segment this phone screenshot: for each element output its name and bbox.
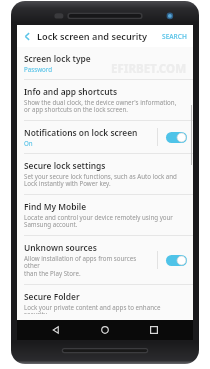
staticText: SEARCH xyxy=(162,32,187,41)
button[interactable]: Secure Folder xyxy=(17,285,193,320)
button[interactable]: SEARCH xyxy=(156,29,193,44)
button[interactable]: Notifications on lock screen xyxy=(17,121,193,154)
staticText: Lock your private content and apps to en… xyxy=(24,303,161,314)
staticText: Password xyxy=(24,65,52,73)
button[interactable]: Info and app shortcuts xyxy=(17,80,193,121)
button[interactable]: Unknown sources xyxy=(17,236,193,285)
staticText: Set your secure lock functions, such as … xyxy=(24,172,177,188)
button[interactable]: Find My Mobile xyxy=(17,195,193,236)
staticText: EFIRBET.COM xyxy=(111,61,187,77)
staticText: Info and app shortcuts xyxy=(24,86,118,97)
staticText: Lock screen and security xyxy=(37,30,148,43)
staticText: On xyxy=(24,139,33,147)
staticText: Locate and control your device remotely … xyxy=(24,213,173,229)
button[interactable]: Recent apps xyxy=(144,320,164,340)
staticText: Secure Folder xyxy=(24,291,80,302)
staticText: Notifications on lock screen xyxy=(24,127,138,138)
staticText: Find My Mobile xyxy=(24,201,87,212)
button[interactable]: Secure lock settings xyxy=(17,154,193,195)
staticText: Screen lock type xyxy=(24,53,91,64)
staticText: Allow installation of apps from sources … xyxy=(24,254,153,278)
button[interactable]: Home xyxy=(95,320,115,340)
staticText: Unknown sources xyxy=(24,242,97,253)
button[interactable]: Screen lock type xyxy=(17,47,193,80)
staticText: Secure lock settings xyxy=(24,160,106,171)
button[interactable]: Toggle Notifications on lock screen xyxy=(164,130,189,145)
staticText: Show the dual clock, the device owner's … xyxy=(24,98,177,114)
button[interactable]: Back xyxy=(17,26,37,46)
button[interactable]: Toggle Unknown sources xyxy=(164,253,189,268)
button[interactable]: Back xyxy=(46,320,66,340)
